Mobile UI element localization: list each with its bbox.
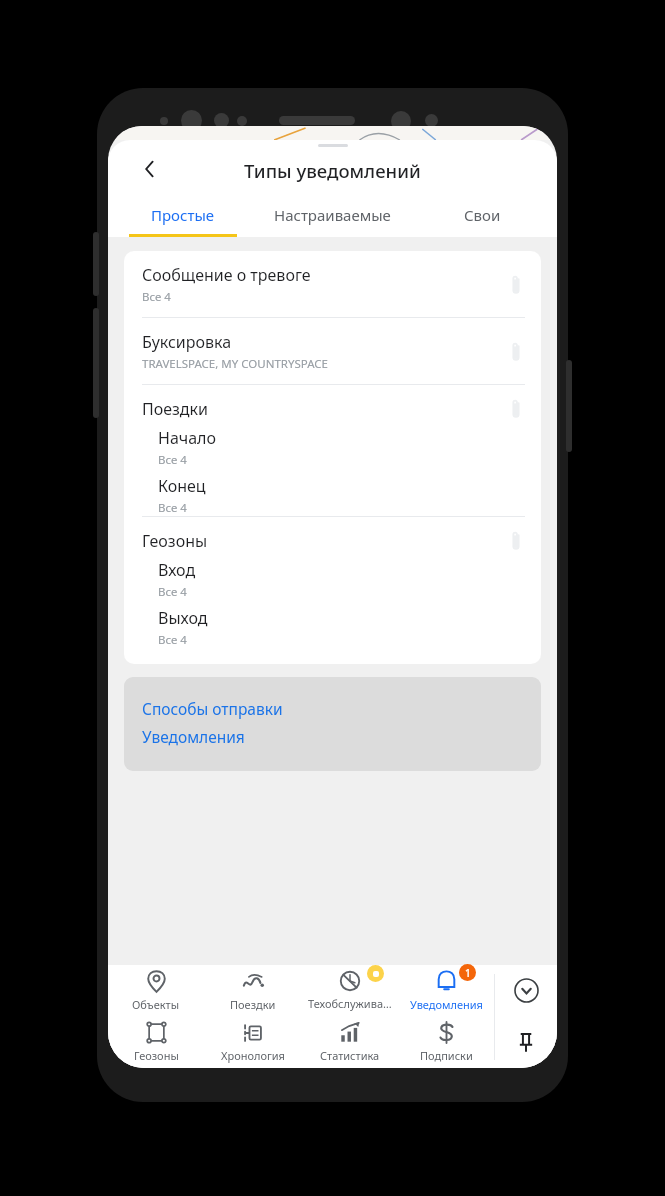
button[interactable]: Поездки (124, 385, 541, 420)
button[interactable]: Свои (407, 197, 557, 237)
button[interactable]: Геозоны (124, 517, 541, 552)
staticText: Буксировка (142, 331, 232, 353)
button[interactable]: Геозоны (108, 1016, 204, 1068)
button[interactable]: 1 (398, 965, 495, 1016)
staticText: Геозоны (134, 1048, 179, 1063)
button[interactable]: Буксировка (124, 318, 541, 384)
staticText: Конец (158, 475, 206, 497)
staticText: 1 (465, 966, 471, 980)
staticText: Уведомления (142, 726, 245, 747)
button[interactable]: Свернуть (495, 965, 557, 1016)
staticText: TRAVELSPACE, MY COUNTRYSPACE (142, 356, 328, 372)
staticText: Техобслужива… (308, 996, 392, 1011)
staticText: Все 4 (158, 632, 187, 648)
staticText: Свои (464, 205, 501, 225)
staticText: Простые (151, 205, 215, 225)
staticText: Поездки (230, 997, 276, 1012)
button[interactable]: Закрепить (495, 1016, 557, 1068)
button[interactable]: Хронология (204, 1016, 301, 1068)
staticText: Подписки (420, 1048, 473, 1063)
button[interactable]: Поездки (204, 965, 301, 1016)
button[interactable]: Выход (124, 600, 541, 648)
button[interactable]: Начало (124, 420, 541, 468)
staticText: Все 4 (158, 500, 187, 516)
staticText: Вход (158, 559, 196, 581)
staticText: Все 4 (142, 289, 171, 305)
staticText: Настраиваемые (274, 205, 391, 225)
staticText: Объекты (132, 997, 180, 1012)
button[interactable]: Уведомления (142, 726, 245, 747)
staticText: Начало (158, 427, 217, 449)
other: Вложение (505, 398, 527, 420)
other: Вложение (505, 274, 527, 296)
button[interactable]: Техобслужива… (301, 965, 398, 1016)
staticText: Сообщение о тревоге (142, 264, 311, 286)
staticText: Способы отправки (142, 698, 283, 719)
staticText: Геозоны (142, 530, 505, 552)
button[interactable]: Простые (108, 197, 257, 237)
button[interactable]: Конец (124, 468, 541, 516)
button[interactable]: Сообщение о тревоге (124, 251, 541, 317)
staticText: Хронология (221, 1048, 285, 1063)
staticText: Поездки (142, 398, 505, 420)
button[interactable]: Подписки (398, 1016, 495, 1068)
staticText: Все 4 (158, 584, 187, 600)
staticText: Выход (158, 607, 208, 629)
button[interactable]: Способы отправки (142, 698, 283, 719)
staticText: Уведомления (410, 997, 483, 1012)
button[interactable]: Статистика (301, 1016, 398, 1068)
button[interactable]: Настраиваемые (257, 197, 407, 237)
staticText: Статистика (320, 1048, 380, 1063)
staticText: Все 4 (158, 452, 187, 468)
staticText: Типы уведомлений (244, 158, 421, 183)
other: Вложение (505, 341, 527, 363)
button[interactable]: Объекты (108, 965, 204, 1016)
button[interactable]: Назад (130, 149, 170, 189)
other: Вложение (505, 530, 527, 552)
button[interactable]: Вход (124, 552, 541, 600)
